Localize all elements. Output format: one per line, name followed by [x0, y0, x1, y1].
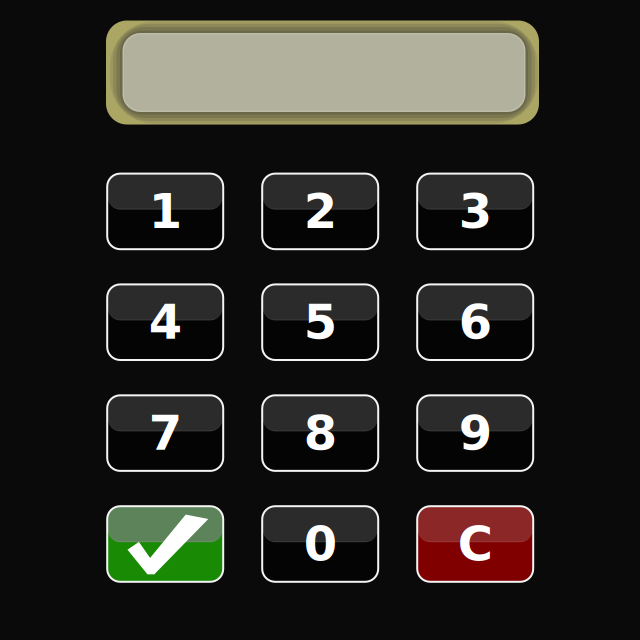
button[interactable]: Enter [107, 506, 223, 582]
staticText: 5 [304, 294, 337, 350]
button[interactable]: 9 [417, 395, 533, 471]
button[interactable]: 8 [262, 395, 378, 471]
button[interactable]: Clear [417, 506, 533, 582]
staticText: 0 [304, 516, 337, 572]
button[interactable]: 0 [262, 506, 378, 582]
button[interactable]: 1 [107, 174, 223, 249]
button[interactable]: 2 [262, 174, 378, 249]
button[interactable]: 3 [417, 174, 533, 249]
staticText: 2 [304, 183, 337, 239]
staticText: 3 [459, 183, 492, 239]
staticText: 8 [304, 405, 337, 461]
staticText: 4 [149, 294, 182, 350]
button[interactable]: 5 [262, 284, 378, 360]
button[interactable]: 4 [107, 284, 223, 360]
staticText: C [458, 516, 493, 572]
staticText: 6 [459, 294, 492, 350]
staticText: 1 [149, 183, 182, 239]
button[interactable]: 7 [107, 395, 223, 471]
staticText: 7 [149, 405, 182, 461]
staticText: 9 [459, 405, 492, 461]
button[interactable]: 6 [417, 284, 533, 360]
